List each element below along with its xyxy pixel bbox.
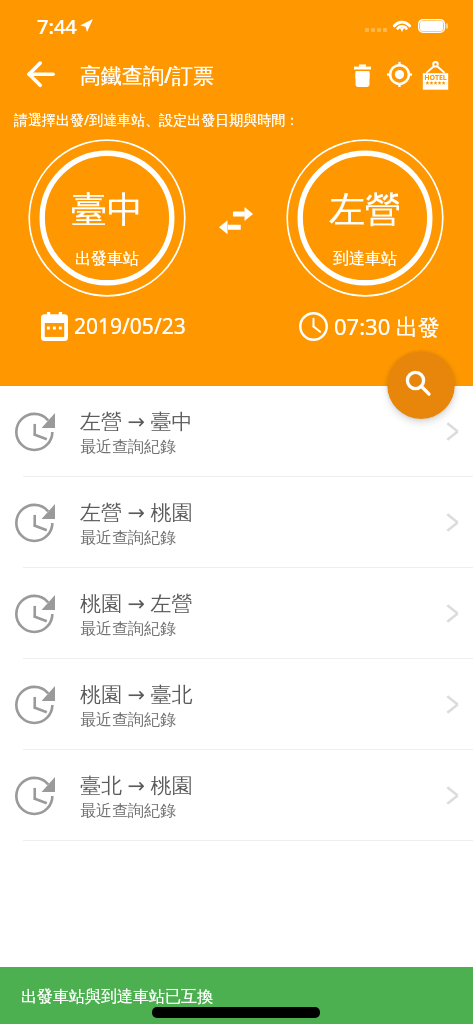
- button[interactable]: 桃園 → 臺北: [0, 659, 473, 750]
- button[interactable]: Search: [387, 351, 455, 419]
- button[interactable]: Hotel: [422, 60, 449, 90]
- button[interactable]: Swap stations: [219, 207, 253, 234]
- staticText: 桃園 → 臺北: [80, 680, 193, 709]
- staticText: 請選擇出發/到達車站、設定出發日期與時間：: [14, 110, 300, 129]
- staticText: 出發車站: [28, 249, 186, 269]
- staticText: 最近查詢紀錄: [80, 528, 176, 548]
- button[interactable]: 臺北 → 桃園: [0, 750, 473, 841]
- button[interactable]: 07:30 出發: [299, 311, 440, 341]
- button[interactable]: 2019/05/23: [41, 312, 186, 341]
- button[interactable]: 臺中: [28, 139, 186, 297]
- staticText: 左營 → 桃園: [80, 498, 193, 527]
- button[interactable]: 左營 → 桃園: [0, 477, 473, 568]
- staticText: 最近查詢紀錄: [80, 801, 176, 821]
- staticText: 2019/05/23: [74, 312, 186, 341]
- button[interactable]: Delete: [354, 63, 371, 87]
- button[interactable]: 桃園 → 左營: [0, 568, 473, 659]
- staticText: 出發車站與到達車站已互換: [21, 987, 213, 1007]
- button[interactable]: Back: [24, 61, 58, 89]
- staticText: 臺北 → 桃園: [80, 771, 193, 800]
- button[interactable]: 左營 → 臺中: [0, 386, 473, 477]
- button[interactable]: 左營: [286, 139, 444, 297]
- staticText: 最近查詢紀錄: [80, 437, 176, 457]
- staticText: 07:30 出發: [334, 311, 440, 341]
- staticText: 桃園 → 左營: [80, 589, 193, 618]
- staticText: 7:44: [37, 13, 77, 40]
- staticText: 左營 → 臺中: [80, 407, 193, 436]
- staticText: 左營: [286, 187, 444, 232]
- button[interactable]: Locate me: [387, 62, 412, 87]
- staticText: 最近查詢紀錄: [80, 710, 176, 730]
- staticText: 臺中: [28, 187, 186, 232]
- staticText: 到達車站: [286, 249, 444, 269]
- staticText: 高鐵查詢/訂票: [80, 61, 215, 90]
- staticText: 最近查詢紀錄: [80, 619, 176, 639]
- staticText: HOTEL: [422, 73, 449, 83]
